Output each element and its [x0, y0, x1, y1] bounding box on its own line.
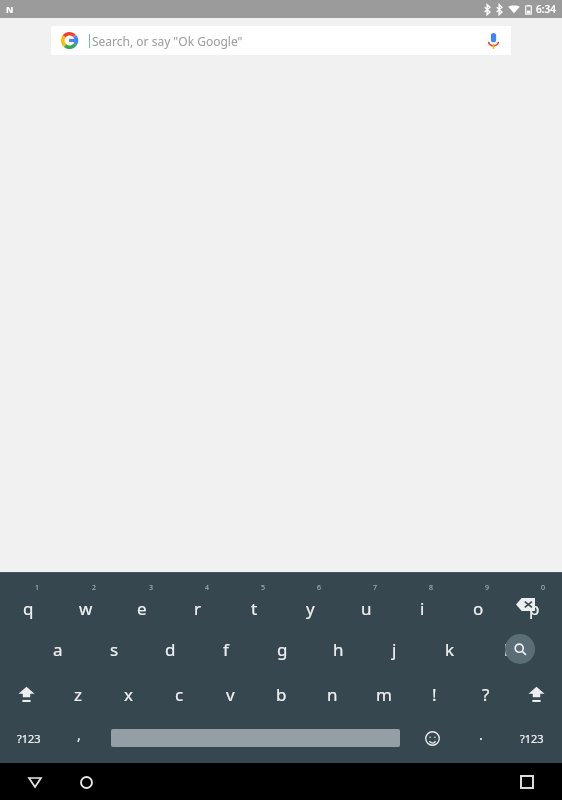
button[interactable]: ! [409, 675, 460, 713]
staticText: 3 [149, 583, 154, 593]
button[interactable]: s [86, 630, 142, 668]
button[interactable]: j [366, 630, 422, 668]
staticText: h [333, 638, 344, 661]
staticText: 4 [205, 583, 210, 593]
button[interactable]: a [29, 630, 86, 668]
staticText: n [327, 683, 338, 706]
button[interactable]: Home [68, 764, 104, 800]
button[interactable]: Search [505, 634, 535, 664]
button[interactable]: q [0, 583, 57, 623]
staticText: 1 [35, 583, 40, 593]
button[interactable]: k [422, 630, 478, 668]
button[interactable]: Shift [0, 675, 52, 713]
button[interactable]: Emoji [414, 720, 450, 756]
button[interactable]: o [450, 583, 506, 623]
staticText: . [479, 725, 483, 744]
staticText: b [276, 683, 287, 706]
button[interactable]: , [62, 720, 96, 756]
staticText: , [77, 725, 81, 744]
staticText: y [306, 597, 315, 620]
button[interactable]: c [154, 675, 205, 713]
button[interactable]: b [256, 675, 307, 713]
button[interactable]: Back [17, 764, 53, 800]
button[interactable]: f [198, 630, 254, 668]
staticText: e [137, 597, 147, 620]
button[interactable]: l [478, 630, 534, 668]
button[interactable]: d [142, 630, 198, 668]
staticText: i [420, 597, 425, 620]
staticText: s [110, 638, 119, 661]
button[interactable]: e [114, 583, 170, 623]
button[interactable]: ?123 [6, 720, 52, 756]
button[interactable]: y [282, 583, 338, 623]
staticText: 9 [485, 583, 490, 593]
staticText: c [175, 683, 184, 706]
button[interactable]: z [52, 675, 103, 713]
staticText: w [79, 597, 93, 620]
staticText: 5 [261, 583, 266, 593]
staticText: u [361, 597, 372, 620]
button[interactable]: Recent apps [509, 764, 545, 800]
staticText: o [473, 597, 484, 620]
staticText: N [6, 3, 14, 15]
button[interactable]: n [307, 675, 358, 713]
button[interactable]: ?123 [509, 720, 555, 756]
button[interactable]: Shift [511, 675, 562, 713]
staticText: 2 [92, 583, 97, 593]
staticText: 8 [429, 583, 434, 593]
staticText: Search, or say "Ok Google" [92, 33, 243, 49]
button[interactable]: Backspace [516, 592, 552, 616]
staticText: 6:34 [536, 2, 556, 16]
staticText: x [124, 683, 133, 706]
button[interactable]: x [103, 675, 154, 713]
button[interactable]: i [394, 583, 450, 623]
staticText: 6 [317, 583, 322, 593]
button[interactable]: w [57, 583, 114, 623]
staticText: ?123 [17, 731, 41, 746]
staticText: ? [482, 683, 490, 706]
button[interactable]: t [226, 583, 282, 623]
button[interactable]: m [358, 675, 409, 713]
staticText: v [226, 683, 235, 706]
staticText: f [223, 638, 229, 661]
staticText: p [529, 597, 540, 620]
button[interactable]: r [170, 583, 226, 623]
button[interactable]: ? [460, 675, 511, 713]
staticText: d [165, 638, 176, 661]
button[interactable]: p [506, 583, 562, 623]
staticText: m [376, 683, 392, 706]
staticText: q [23, 597, 34, 620]
staticText: z [74, 683, 82, 706]
staticText: a [53, 638, 63, 661]
button[interactable]: Voice search [478, 26, 508, 55]
staticText: t [251, 597, 258, 620]
staticText: j [392, 638, 397, 661]
staticText: g [277, 638, 288, 661]
button[interactable]: v [205, 675, 256, 713]
staticText: l [504, 638, 509, 661]
button[interactable]: h [310, 630, 366, 668]
button[interactable]: . [464, 720, 498, 756]
button[interactable]: g [254, 630, 310, 668]
staticText: 0 [541, 583, 546, 593]
staticText: ?123 [520, 731, 544, 746]
button[interactable]: Search, or say "Ok Google" [51, 26, 511, 55]
button[interactable]: u [338, 583, 394, 623]
staticText: ! [432, 683, 437, 706]
staticText: r [194, 597, 202, 620]
staticText: k [445, 638, 455, 661]
staticText: 7 [373, 583, 378, 593]
